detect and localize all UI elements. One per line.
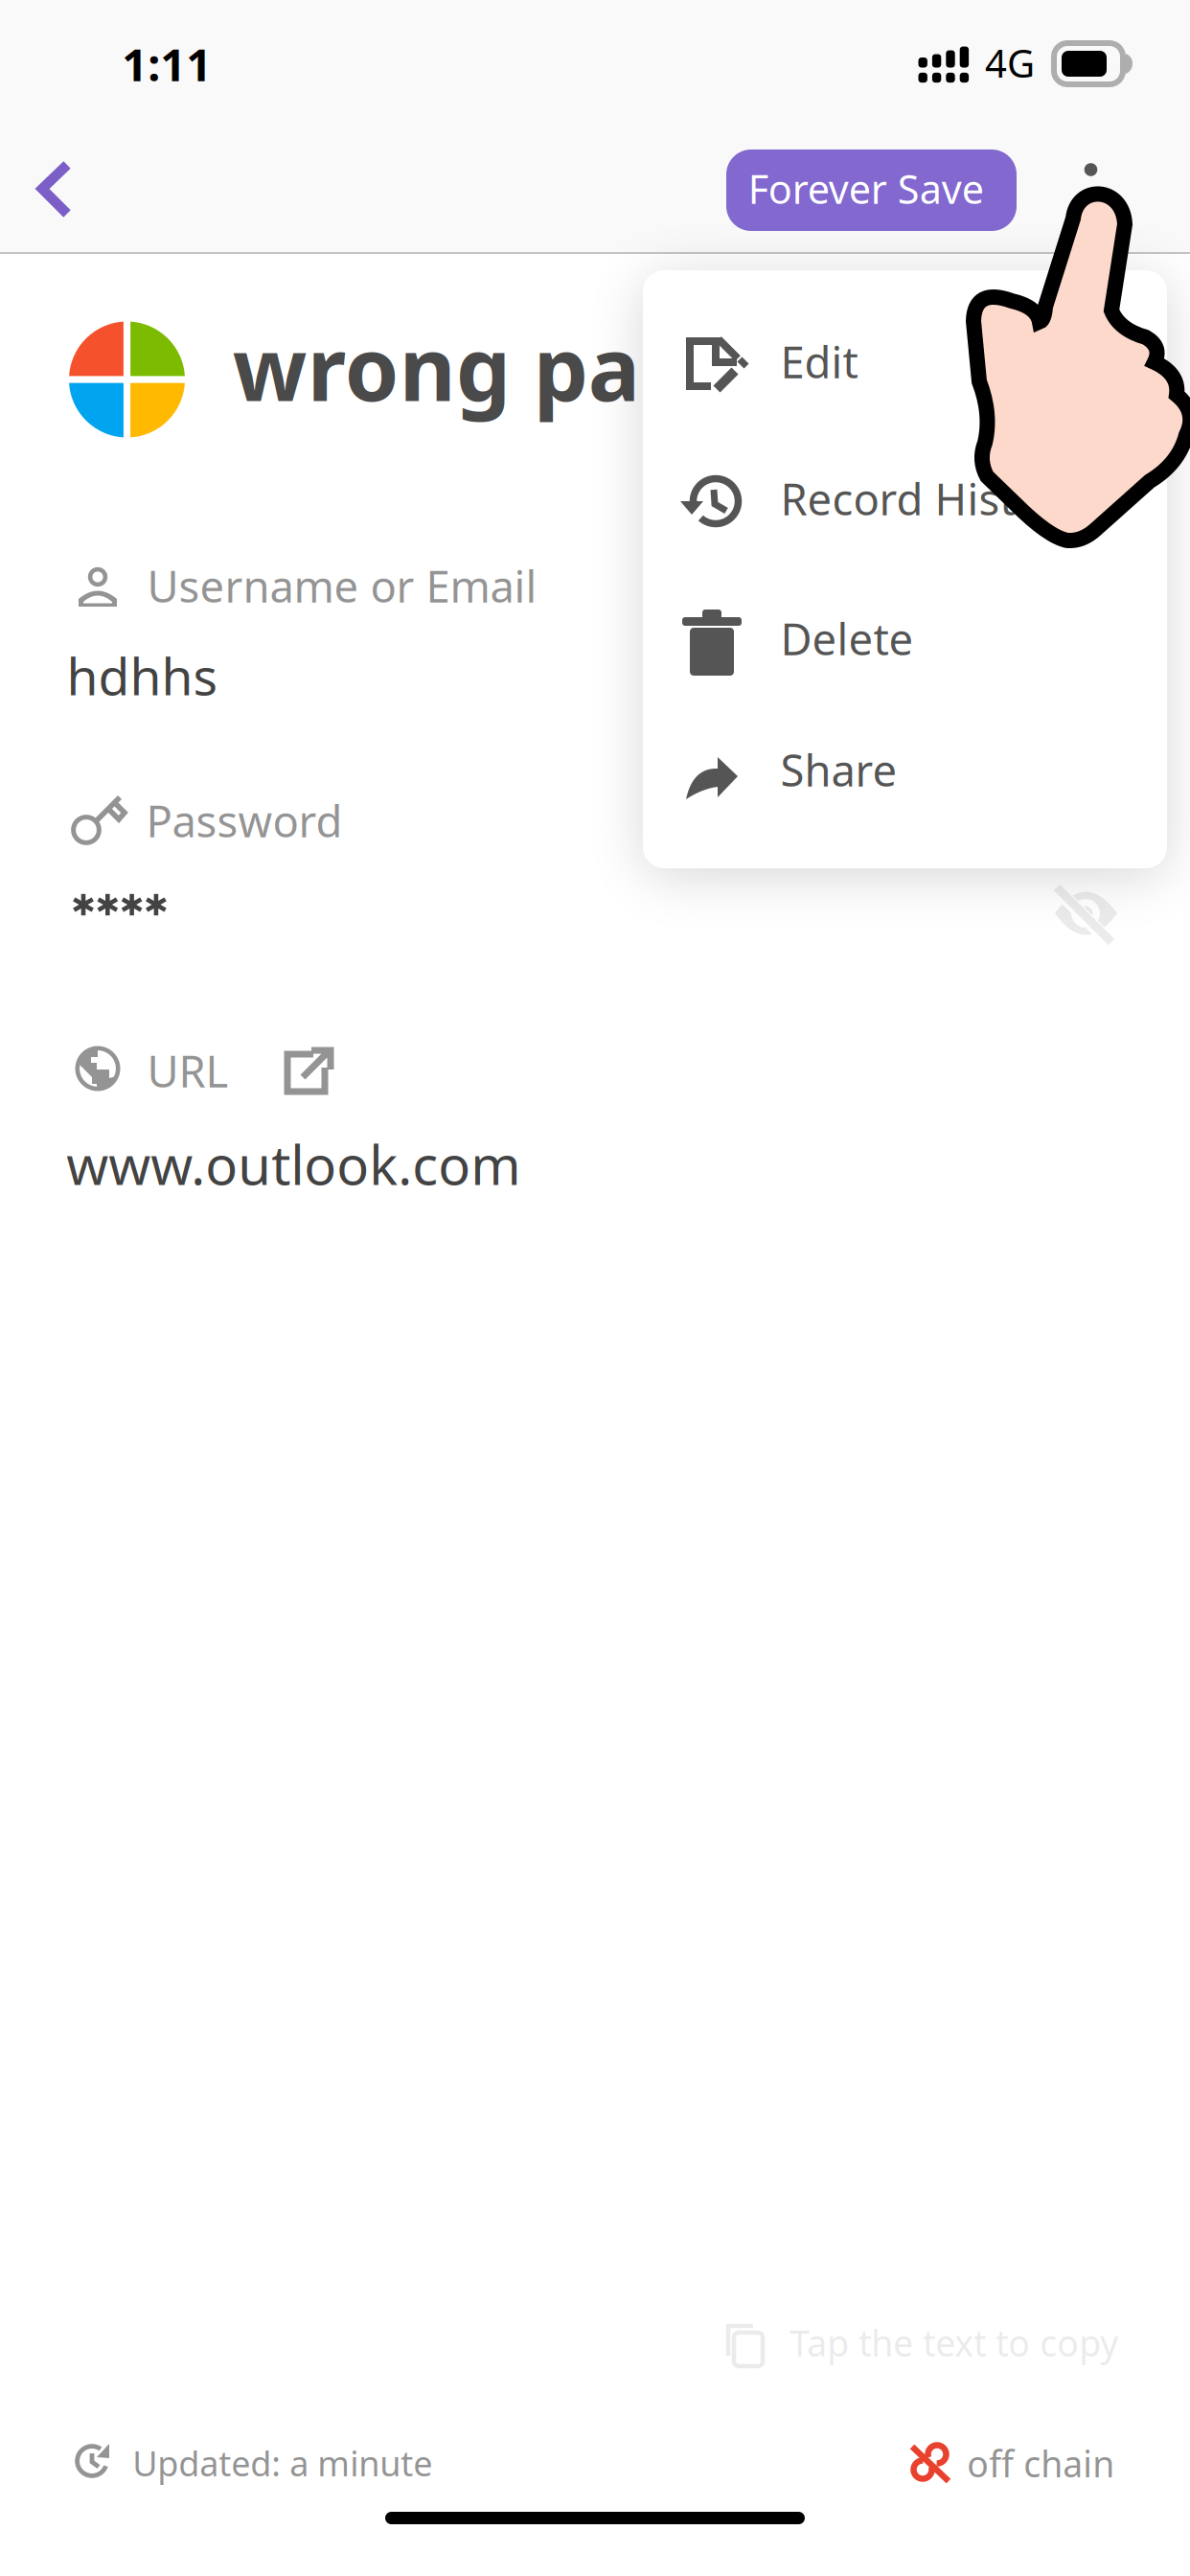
staticText: Delete	[780, 609, 913, 667]
button[interactable]: Record History	[0, 0, 1190, 2576]
staticText: Forever Save	[748, 162, 984, 215]
button[interactable]: More options	[0, 0, 1190, 2576]
button[interactable]: Open URL	[0, 0, 1190, 2576]
staticText: Share	[780, 741, 897, 798]
button[interactable]: Show password	[0, 0, 1190, 2576]
button[interactable]: Share	[0, 0, 1190, 2576]
staticText: Updated: a minute	[133, 2440, 433, 2486]
staticText: wrong pass	[233, 310, 728, 425]
staticText: Record History	[780, 470, 1081, 527]
button[interactable]: hdhhs	[0, 0, 1190, 2576]
staticText: Password	[146, 792, 342, 849]
button[interactable]: Back	[0, 0, 1190, 2576]
staticText: off chain	[967, 2440, 1114, 2487]
button[interactable]	[0, 0, 1190, 2576]
button[interactable]: Delete	[0, 0, 1190, 2576]
staticText: Username or Email	[147, 557, 537, 614]
staticText: URL	[147, 1042, 228, 1099]
button[interactable]: www.outlook.com	[0, 0, 1190, 2576]
button[interactable]: Edit	[0, 0, 1190, 2576]
staticText: Edit	[780, 333, 858, 390]
staticText: 1:11	[122, 34, 212, 94]
staticText: hdhhs	[67, 642, 218, 709]
staticText: 4G	[985, 37, 1035, 88]
staticText: www.outlook.com	[66, 1128, 521, 1200]
button[interactable]: Forever Save	[0, 0, 1190, 2576]
staticText: Tap the text to copy	[790, 2319, 1118, 2366]
